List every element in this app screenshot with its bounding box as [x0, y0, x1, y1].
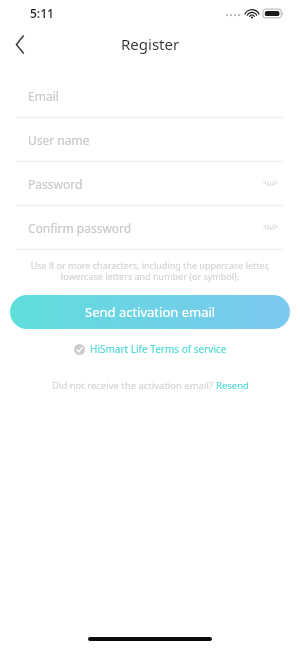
staticText: Use 8 or more characters, including the … [18, 259, 282, 283]
staticText: Did not receive the activation email? [52, 379, 216, 392]
button[interactable]: Confirm password [0, 206, 300, 249]
staticText: Send activation email [85, 303, 216, 321]
staticText: Password [28, 176, 83, 192]
staticText: User name [28, 132, 90, 148]
button[interactable]: Show password [256, 170, 284, 198]
staticText: Email [28, 88, 59, 104]
staticText: 5:11 [30, 5, 54, 21]
button[interactable]: Back [0, 26, 40, 62]
button[interactable]: Resend [216, 379, 249, 392]
button[interactable]: HiSmart Life Terms of service [68, 339, 233, 359]
button[interactable]: Password [0, 162, 300, 205]
button[interactable]: Send activation email [10, 295, 290, 329]
staticText: Register [121, 34, 180, 54]
staticText: Resend [216, 379, 249, 392]
button[interactable]: Email [0, 74, 300, 117]
button[interactable]: User name [0, 118, 300, 161]
button[interactable]: Show password [256, 214, 284, 242]
staticText: HiSmart Life Terms of service [90, 342, 227, 356]
staticText: Confirm password [28, 220, 132, 236]
